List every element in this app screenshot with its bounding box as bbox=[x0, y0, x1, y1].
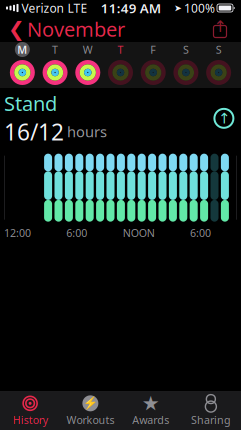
staticText: LTE bbox=[67, 0, 87, 16]
button[interactable]: F bbox=[137, 42, 170, 57]
staticText: Sharing bbox=[191, 413, 231, 427]
staticText: 272 bbox=[4, 373, 37, 400]
staticText: 12:00 bbox=[4, 226, 31, 240]
staticText: History bbox=[13, 413, 48, 427]
staticText: S bbox=[183, 42, 189, 57]
staticText: W bbox=[83, 42, 93, 57]
button[interactable]: Day 4 activity bbox=[104, 60, 137, 85]
button[interactable]: 272 bbox=[0, 369, 241, 404]
staticText: Steps bbox=[4, 414, 52, 430]
staticText: Awards bbox=[132, 413, 169, 427]
button[interactable]: Share bbox=[207, 17, 233, 41]
button[interactable]: Day 7 activity bbox=[202, 60, 235, 85]
staticText: ❮ bbox=[8, 18, 25, 40]
button[interactable]: Day 3 activity bbox=[71, 60, 104, 85]
staticText: hours bbox=[67, 122, 107, 141]
staticText: M bbox=[17, 42, 27, 57]
staticText: Verizon bbox=[21, 0, 63, 16]
button[interactable]: History bbox=[0, 392, 60, 430]
button[interactable]: ❮ bbox=[8, 13, 131, 45]
staticText: ↑ bbox=[213, 17, 226, 36]
staticText: Cal Mixed Cardio bbox=[41, 377, 156, 396]
button[interactable]: Day 6 activity bbox=[170, 60, 202, 85]
staticText: Distance bbox=[120, 414, 197, 430]
button[interactable]: Stand goal reached bbox=[211, 105, 237, 131]
staticText: ❯ bbox=[225, 378, 237, 395]
button[interactable]: M bbox=[6, 42, 39, 57]
staticText: S bbox=[216, 42, 222, 57]
staticText: F bbox=[150, 42, 156, 57]
button[interactable]: T bbox=[104, 42, 137, 57]
staticText: Stand bbox=[4, 90, 57, 117]
staticText: Workouts bbox=[66, 413, 114, 427]
button[interactable]: ★ bbox=[120, 392, 181, 430]
button[interactable]: S bbox=[202, 42, 235, 57]
button[interactable]: Day 1 activity bbox=[6, 60, 39, 85]
staticText: 6:00 bbox=[66, 226, 87, 240]
button[interactable]: S bbox=[170, 42, 202, 57]
staticText: 11:49 AM bbox=[101, 0, 161, 17]
staticText: November bbox=[27, 16, 125, 42]
staticText: NOON bbox=[123, 226, 155, 240]
button[interactable]: Day 5 activity bbox=[137, 60, 170, 85]
button[interactable]: ⚡ bbox=[60, 392, 120, 430]
staticText: 6:00 bbox=[190, 226, 211, 240]
staticText: T bbox=[117, 42, 123, 57]
staticText: ➤ bbox=[174, 3, 182, 13]
staticText: 16/12 bbox=[4, 117, 64, 147]
button[interactable]: Sharing bbox=[181, 392, 241, 430]
button[interactable]: W bbox=[71, 42, 104, 57]
staticText: ↑ bbox=[218, 110, 230, 127]
button[interactable]: Day 2 activity bbox=[39, 60, 71, 85]
staticText: ⚡ bbox=[83, 396, 98, 410]
staticText: 100% bbox=[184, 0, 215, 16]
button[interactable]: T bbox=[39, 42, 71, 57]
staticText: ★ bbox=[142, 392, 160, 415]
staticText: T bbox=[52, 42, 58, 57]
